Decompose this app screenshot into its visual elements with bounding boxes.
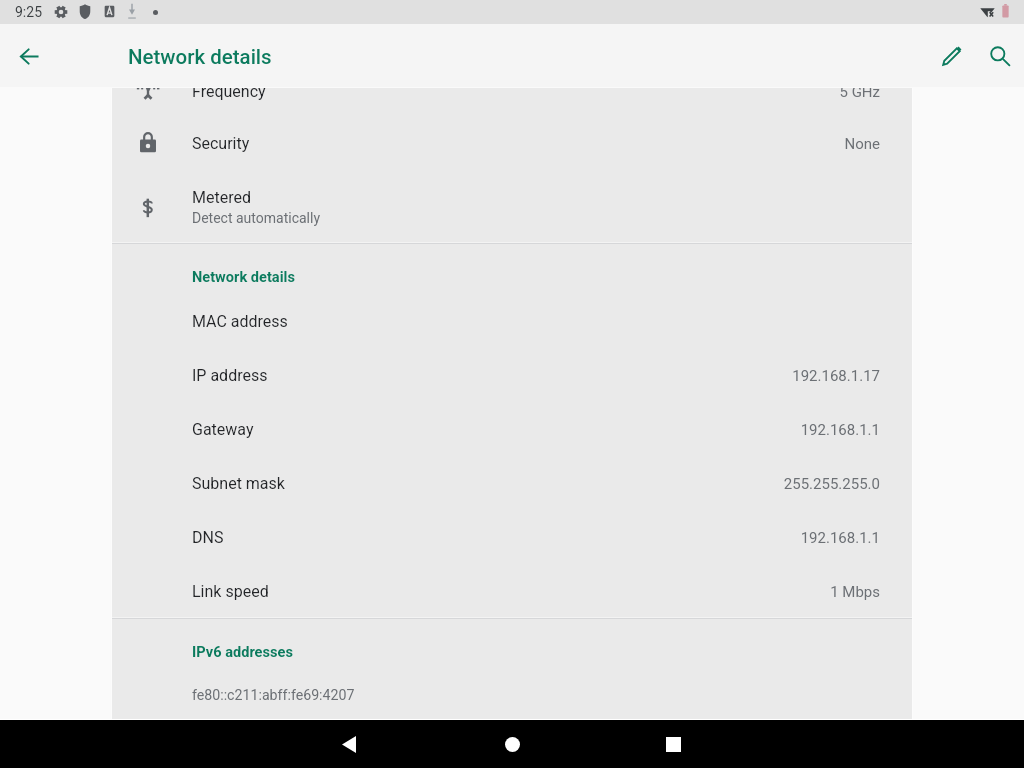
staticText: 192.168.1.1: [480, 421, 880, 439]
staticText: Subnet mask: [192, 474, 285, 493]
button[interactable]: Subnet mask: [112, 450, 912, 504]
button[interactable]: DNS: [112, 504, 912, 558]
button[interactable]: Gateway: [112, 396, 912, 450]
button[interactable]: Navigate up: [5, 32, 53, 80]
button[interactable]: Edit: [928, 32, 976, 80]
staticText: 192.168.1.17: [480, 367, 880, 385]
staticText: Network details: [192, 268, 295, 285]
staticText: 5 GHz: [480, 83, 880, 101]
staticText: DNS: [192, 528, 224, 547]
staticText: IPv6 addresses: [192, 643, 293, 660]
staticText: 9:25: [15, 4, 42, 20]
staticText: Detect automatically: [192, 210, 321, 226]
button[interactable]: Recent apps: [649, 720, 697, 768]
staticText: MAC address: [192, 312, 288, 331]
button[interactable]: MAC address: [112, 288, 912, 342]
staticText: Gateway: [192, 420, 254, 439]
staticText: None: [480, 135, 880, 153]
staticText: fe80::c211:abff:fe69:4207: [192, 687, 355, 704]
staticText: 192.168.1.1: [480, 529, 880, 547]
staticText: 255.255.255.0: [480, 475, 880, 493]
button[interactable]: Search: [976, 32, 1024, 80]
staticText: Security: [192, 134, 250, 153]
staticText: Metered: [192, 188, 251, 207]
staticText: 1 Mbps: [480, 583, 880, 601]
button[interactable]: Frequency: [112, 88, 912, 115]
button[interactable]: Security: [112, 115, 912, 169]
button[interactable]: IP address: [112, 342, 912, 396]
staticText: IP address: [192, 366, 268, 385]
button[interactable]: Metered: [112, 169, 912, 242]
staticText: Network details: [128, 45, 272, 69]
button[interactable]: Back: [325, 720, 373, 768]
staticText: Frequency: [192, 82, 266, 101]
button[interactable]: Link speed: [112, 558, 912, 612]
staticText: Link speed: [192, 582, 269, 601]
button[interactable]: Home: [488, 720, 536, 768]
